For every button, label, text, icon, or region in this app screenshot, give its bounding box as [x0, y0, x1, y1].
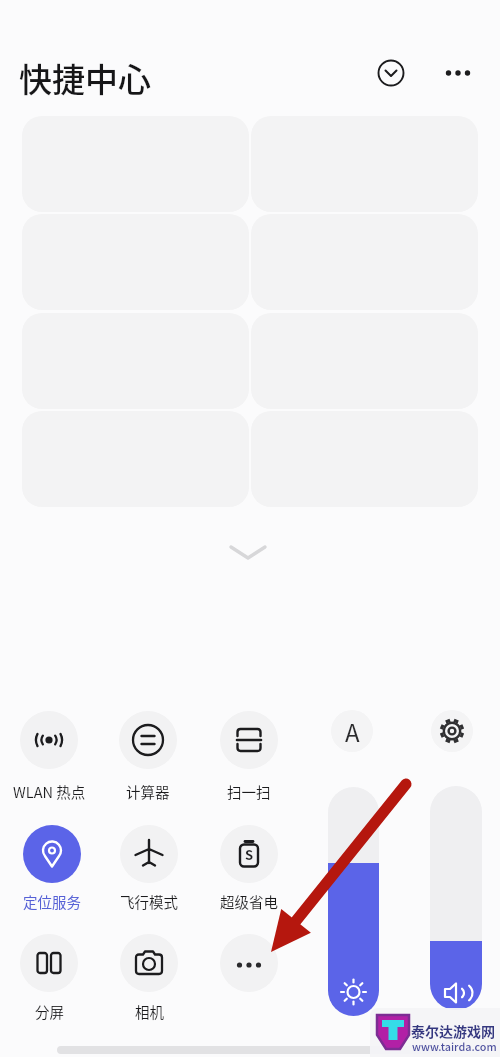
button[interactable]	[119, 711, 177, 769]
button[interactable]	[20, 711, 78, 769]
button[interactable]	[328, 787, 379, 1016]
staticText: S	[245, 845, 254, 864]
staticText: WLAN 热点	[13, 781, 86, 802]
staticText: 泰尔达游戏网	[411, 1021, 495, 1041]
button[interactable]	[374, 56, 408, 90]
staticText: 相机	[135, 1001, 164, 1022]
staticText: A	[345, 714, 360, 749]
staticText: 快捷中心	[19, 54, 151, 102]
staticText: 计算器	[126, 781, 170, 802]
button[interactable]	[120, 825, 178, 883]
staticText: 超级省电	[220, 891, 278, 912]
button[interactable]	[220, 825, 278, 883]
button[interactable]	[430, 786, 482, 1010]
button[interactable]	[23, 825, 81, 883]
staticText: 飞行模式	[120, 891, 178, 912]
staticText: 定位服务	[23, 891, 81, 912]
button[interactable]	[120, 934, 178, 992]
staticText: www.tairda.com	[412, 1038, 497, 1054]
staticText: 扫一扫	[227, 781, 271, 802]
staticText: 分屏	[35, 1001, 64, 1022]
button[interactable]	[220, 711, 278, 769]
button[interactable]	[431, 710, 473, 752]
button[interactable]	[220, 934, 278, 992]
button[interactable]: A	[331, 710, 373, 752]
button[interactable]	[20, 934, 78, 992]
button[interactable]	[441, 56, 475, 90]
button[interactable]	[218, 533, 278, 573]
